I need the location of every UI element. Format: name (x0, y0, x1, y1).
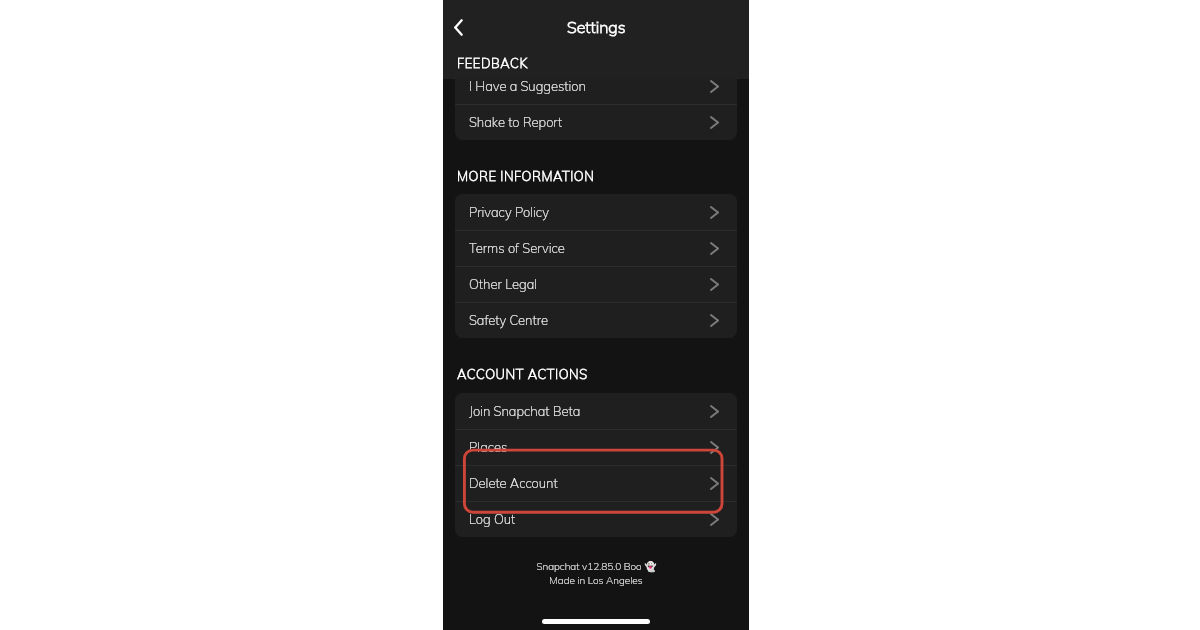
button[interactable]: Places (455, 429, 737, 465)
staticText: FEEDBACK (457, 55, 528, 71)
button[interactable]: Terms of Service (455, 230, 737, 266)
staticText: Other Legal (469, 276, 538, 292)
button[interactable]: Privacy Policy (455, 194, 737, 230)
staticText: Places (469, 439, 508, 455)
staticText: Log Out (469, 511, 516, 527)
staticText: MORE INFORMATION (457, 168, 595, 184)
staticText: Shake to Report (469, 114, 563, 130)
button[interactable]: Delete Account (455, 465, 737, 501)
button[interactable]: Join Snapchat Beta (455, 393, 737, 429)
button[interactable]: I Have a Suggestion (455, 68, 737, 104)
staticText: I Have a Suggestion (469, 78, 586, 94)
staticText: ACCOUNT ACTIONS (457, 366, 588, 382)
staticText: Safety Centre (469, 312, 549, 328)
staticText: Terms of Service (469, 240, 565, 256)
staticText: Delete Account (469, 475, 558, 491)
button[interactable]: Safety Centre (455, 302, 737, 338)
staticText: Privacy Policy (469, 204, 549, 220)
staticText: Snapchat v12.85.0 Boo 👻 (536, 560, 657, 573)
button[interactable]: Shake to Report (455, 104, 737, 140)
button[interactable]: Other Legal (455, 266, 737, 302)
staticText: Settings (567, 17, 626, 37)
staticText: Made in Los Angeles (549, 574, 643, 587)
staticText: Join Snapchat Beta (469, 403, 581, 419)
button[interactable]: Log Out (455, 501, 737, 537)
button[interactable]: Back (447, 15, 469, 39)
